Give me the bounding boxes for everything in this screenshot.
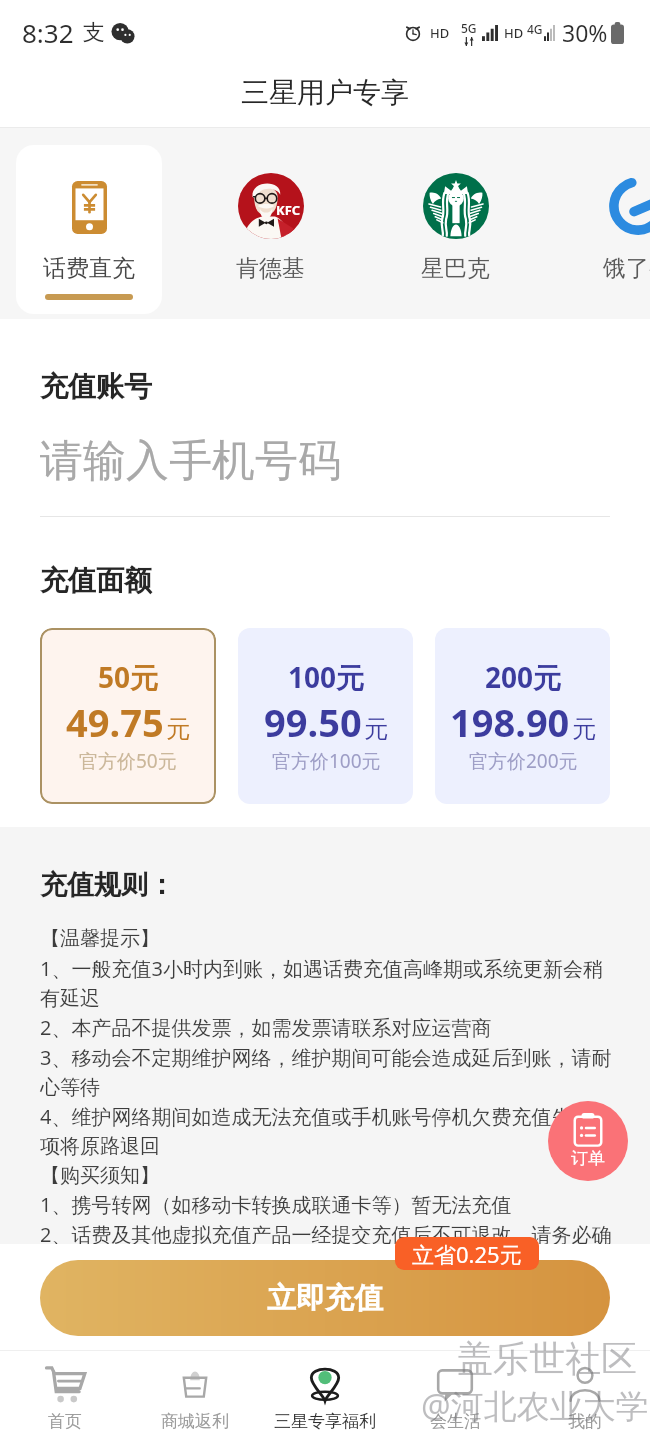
staticText: 4G — [527, 21, 543, 37]
button[interactable]: 首页 — [0, 1351, 130, 1444]
staticText: 【温馨提示】 1、一般充值3小时内到账，如遇话费充值高峰期或系统更新会稍有延迟 … — [40, 926, 618, 1277]
button[interactable]: 话费直充 — [16, 145, 162, 314]
staticText: 5G — [461, 20, 477, 36]
staticText: 盖乐世社区 — [457, 1336, 637, 1381]
staticText: 肯德基 — [236, 254, 305, 283]
staticText: 99.50 — [264, 696, 362, 748]
staticText: HD — [504, 24, 524, 42]
staticText: 198.90 — [450, 696, 570, 748]
button[interactable]: KFC — [210, 173, 330, 303]
staticText: 三星专享福利 — [274, 1411, 376, 1432]
button[interactable]: 星巴克 — [395, 173, 515, 303]
staticText: 官方价50元 — [79, 748, 177, 774]
button[interactable]: 饿了么 — [577, 173, 650, 303]
staticText: @河北农业大学 — [421, 1383, 649, 1428]
staticText: 官方价200元 — [469, 748, 578, 774]
staticText: 星巴克 — [421, 254, 490, 283]
button[interactable]: 三星专享福利 — [260, 1351, 390, 1444]
button[interactable]: 订单 — [548, 1101, 628, 1181]
button[interactable]: 会生活 — [390, 1351, 520, 1444]
staticText: 请输入手机号码 — [40, 434, 341, 488]
staticText: 充值规则： — [40, 868, 175, 902]
staticText: 话费直充 — [43, 254, 135, 283]
staticText: 商城返利 — [161, 1411, 229, 1432]
button[interactable]: 100元 — [238, 628, 413, 804]
staticText: 订单 — [571, 1148, 605, 1169]
staticText: 元 — [166, 714, 190, 744]
staticText: 200元 — [485, 658, 562, 696]
staticText: 官方价100元 — [272, 748, 381, 774]
staticText: 立即充值 — [267, 1280, 383, 1317]
staticText: 元 — [364, 714, 388, 744]
button[interactable]: 我的 — [520, 1351, 650, 1444]
staticText: 元 — [572, 714, 596, 744]
staticText: 50元 — [98, 658, 159, 696]
staticText: 充值账号 — [40, 369, 152, 404]
staticText: KFC — [276, 201, 301, 219]
staticText: 三星用户专享 — [241, 75, 409, 110]
staticText: 支 — [83, 19, 105, 47]
staticText: 会生活 — [430, 1411, 481, 1432]
staticText: HD — [430, 24, 450, 42]
staticText: 首页 — [48, 1411, 82, 1432]
button[interactable]: 请输入手机号码 — [40, 404, 610, 517]
staticText: 饿了么 — [603, 254, 650, 283]
button[interactable]: 50元 — [40, 628, 216, 804]
staticText: 30% — [562, 17, 608, 48]
staticText: 8:32 — [22, 15, 74, 50]
button[interactable]: 立即充值 — [40, 1260, 610, 1336]
button[interactable]: 商城返利 — [130, 1351, 260, 1444]
staticText: 充值面额 — [40, 563, 152, 598]
button[interactable]: 200元 — [435, 628, 610, 804]
staticText: 我的 — [568, 1411, 602, 1432]
staticText: 100元 — [288, 658, 365, 696]
staticText: 立省0.25元 — [412, 1239, 522, 1269]
staticText: 49.75 — [66, 696, 164, 748]
